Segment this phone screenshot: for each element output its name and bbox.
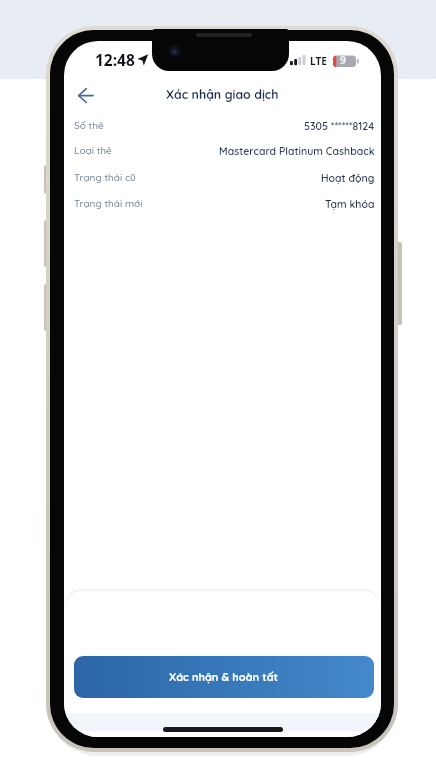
button[interactable]: Xác nhận & hoàn tất — [74, 656, 374, 698]
staticText: LTE — [310, 54, 327, 68]
staticText: Trạng thái cũ — [74, 171, 136, 184]
staticText: Xác nhận & hoàn tất — [169, 670, 279, 684]
button[interactable]: Trạng thái cũ — [74, 168, 375, 186]
staticText: Mastercard Platinum Cashback — [219, 144, 375, 157]
button[interactable]: Loại thẻ — [74, 141, 375, 159]
staticText: 12:48 — [95, 49, 135, 70]
staticText: Loại thẻ — [74, 144, 112, 157]
staticText: Số thẻ — [74, 119, 104, 132]
staticText: 9 — [340, 53, 347, 67]
staticText: 5305 ******8124 — [304, 119, 375, 132]
staticText: Xác nhận giao dịch — [166, 87, 279, 102]
staticText: Tạm khóa — [325, 197, 375, 210]
button[interactable]: Trạng thái mới — [74, 194, 375, 212]
button[interactable] — [68, 80, 98, 110]
staticText: Trạng thái mới — [74, 197, 143, 210]
button[interactable]: Số thẻ — [74, 116, 375, 134]
staticText: Hoạt động — [321, 171, 375, 184]
